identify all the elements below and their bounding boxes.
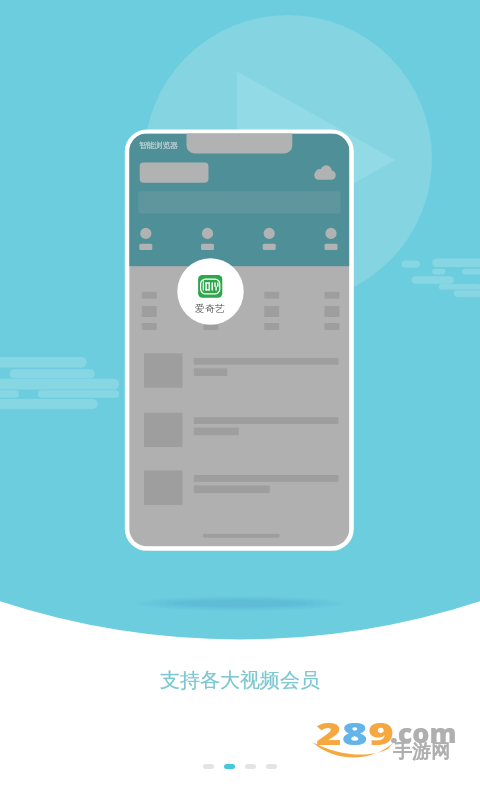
- staticText: 智能浏览器: [139, 140, 178, 150]
- button[interactable]: Page 1: [203, 764, 214, 769]
- button[interactable]: Page 2: [224, 764, 235, 769]
- button[interactable]: Page 4: [266, 764, 277, 769]
- staticText: 手游网: [393, 740, 450, 764]
- staticText: 9: [368, 713, 394, 754]
- button[interactable]: Page 3: [245, 764, 256, 769]
- staticText: 2: [316, 713, 342, 754]
- staticText: .com: [390, 714, 457, 751]
- button[interactable]: 爱奇艺: [177, 258, 243, 324]
- staticText: 8: [342, 713, 368, 754]
- staticText: 支持各大视频会员: [160, 668, 320, 693]
- staticText: 爱奇艺: [195, 302, 225, 315]
